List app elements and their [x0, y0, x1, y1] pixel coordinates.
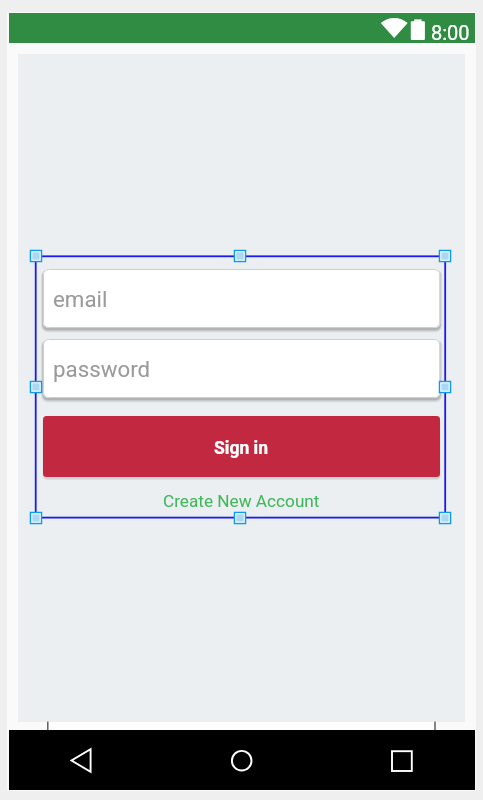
- button[interactable]: Recent apps: [377, 736, 427, 786]
- button[interactable]: Back: [56, 736, 106, 786]
- staticText: 8:00: [431, 21, 470, 44]
- button[interactable]: email: [40, 266, 443, 335]
- other: Wi-Fi and battery status: [378, 14, 428, 44]
- staticText: Sign in: [214, 438, 269, 459]
- button[interactable]: Create New Account: [43, 487, 440, 514]
- staticText: password: [53, 356, 151, 382]
- button[interactable]: Home: [217, 736, 267, 786]
- staticText: email: [53, 286, 108, 312]
- button[interactable]: Sign in: [43, 416, 440, 477]
- staticText: Create New Account: [163, 491, 320, 511]
- button[interactable]: password: [40, 336, 443, 405]
